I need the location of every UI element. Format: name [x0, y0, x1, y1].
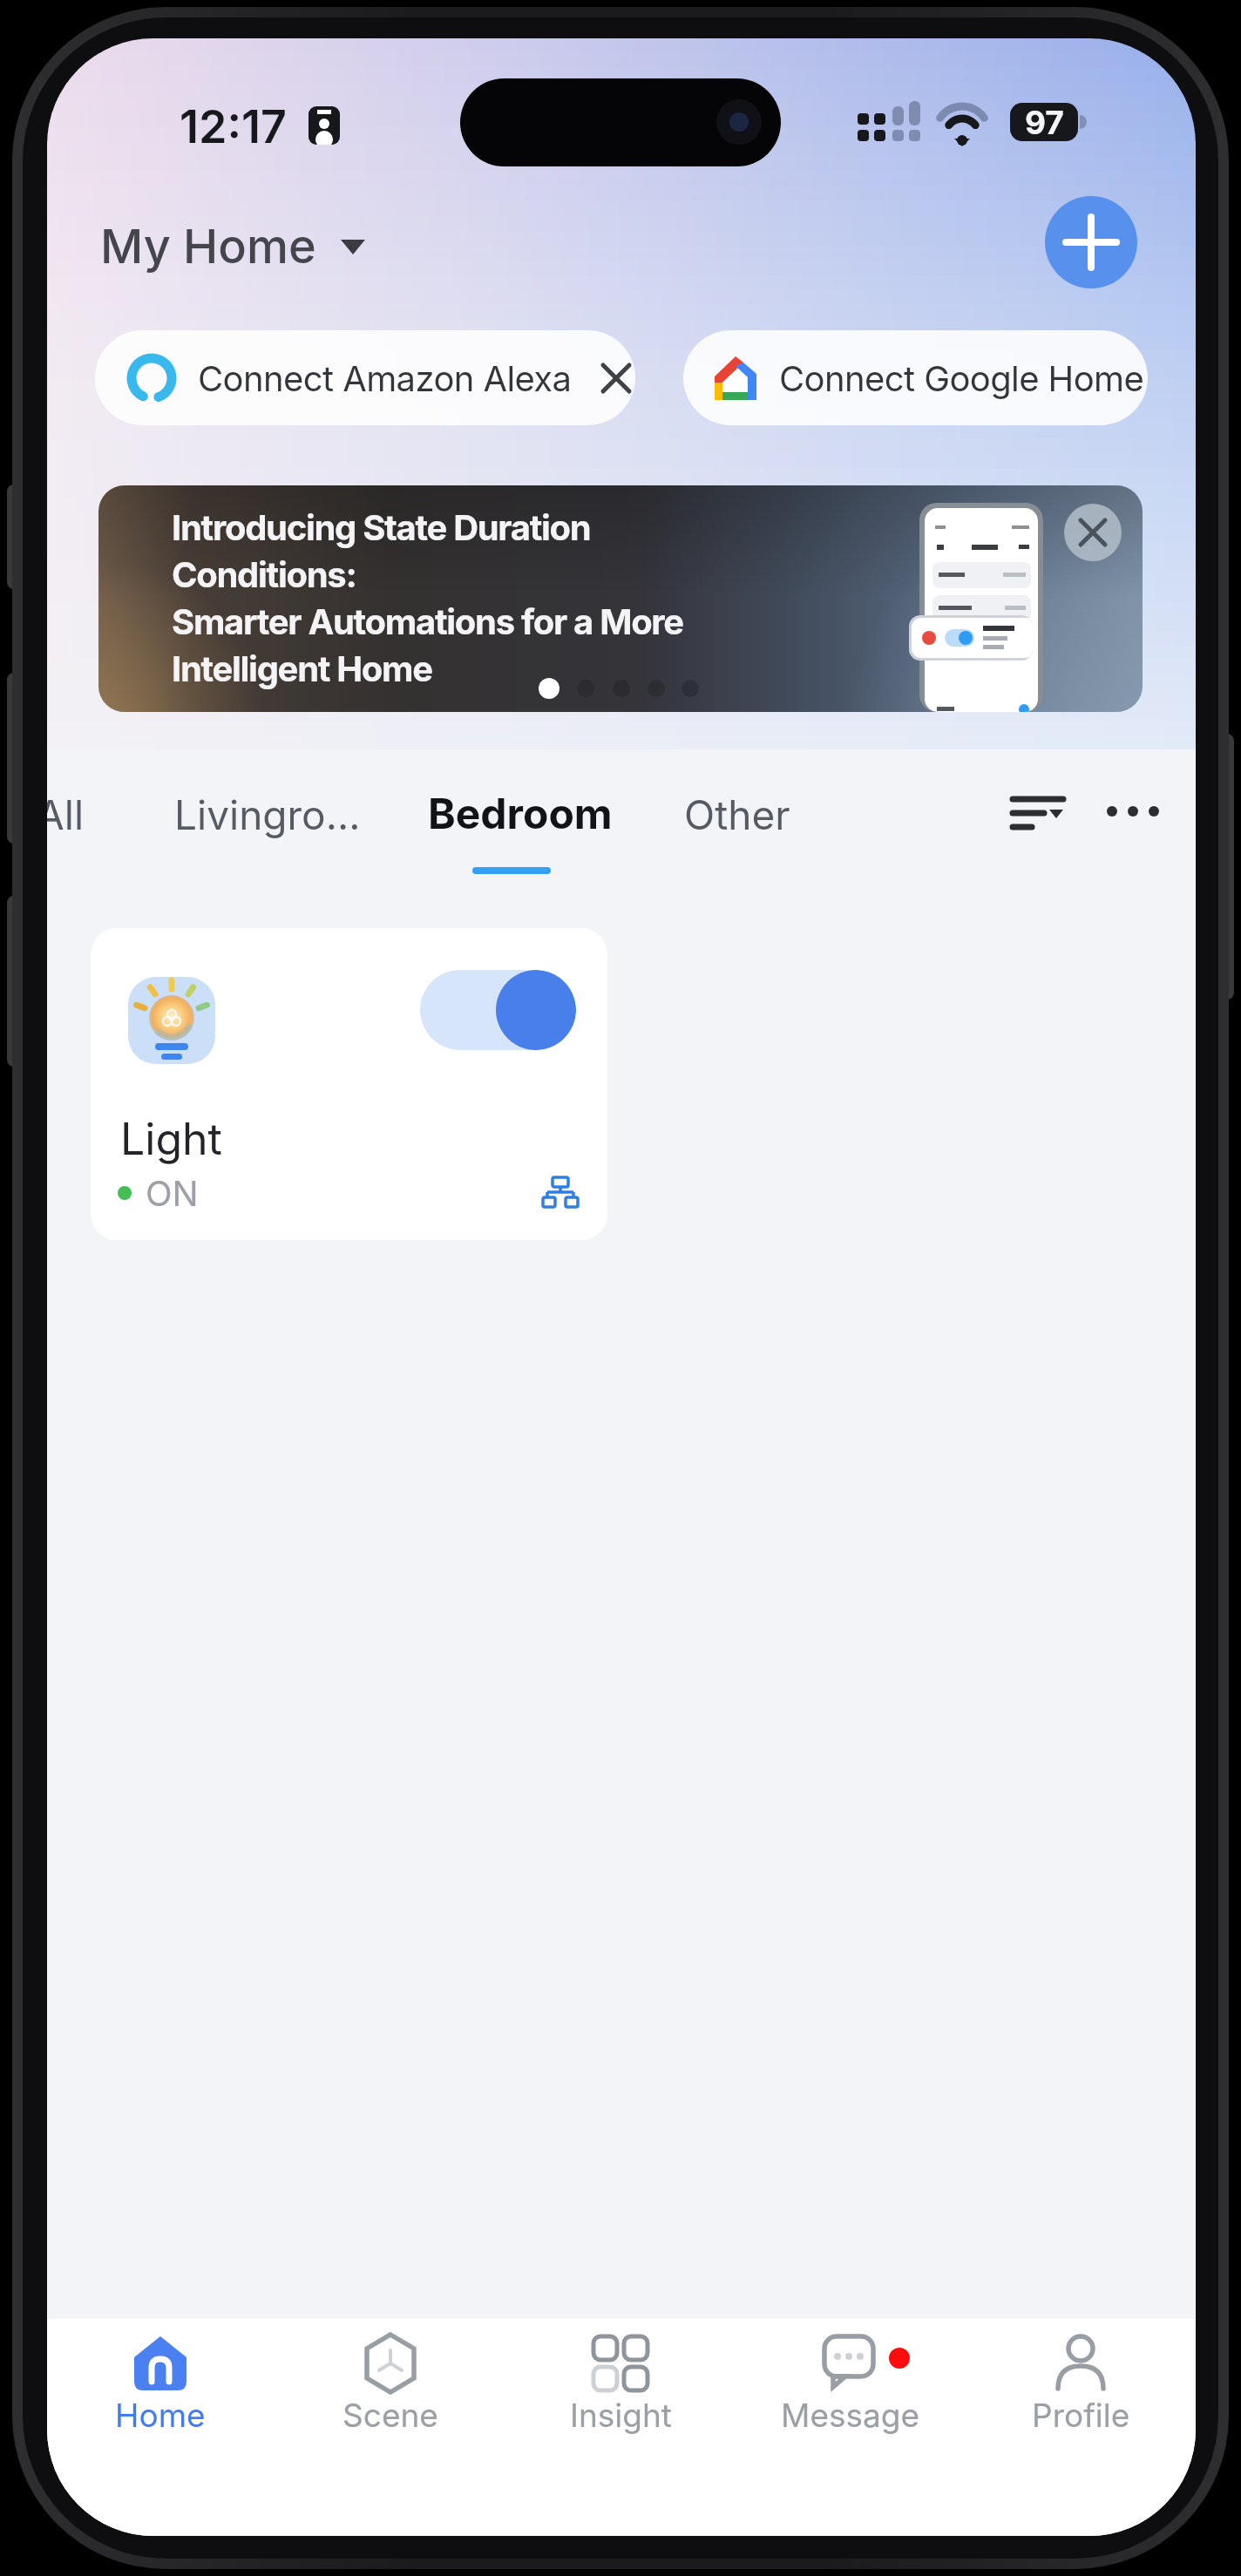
staticText: Insight — [570, 2396, 672, 2435]
button[interactable]: My Home — [100, 218, 365, 275]
button[interactable] — [1013, 796, 1063, 832]
button[interactable]: Introducing State Duration Conditions: S… — [98, 485, 1143, 712]
staticText: Message — [781, 2396, 920, 2435]
button[interactable] — [420, 970, 576, 1050]
button[interactable]: Scene — [312, 2331, 469, 2479]
button[interactable]: Connect Amazon Alexa — [95, 330, 635, 425]
staticText: My Home — [100, 218, 316, 275]
button[interactable]: Insight — [542, 2331, 699, 2479]
staticText: 97 — [1025, 103, 1064, 141]
staticText: ON — [146, 1172, 199, 1214]
button[interactable]: All — [47, 790, 85, 839]
button[interactable]: Home — [82, 2331, 239, 2479]
button[interactable]: Bedroom — [428, 788, 613, 838]
staticText: Connect Amazon Alexa — [198, 357, 572, 399]
button[interactable]: Connect Google Home — [683, 330, 1148, 425]
button[interactable]: Message — [772, 2331, 929, 2479]
button[interactable] — [1045, 196, 1137, 288]
button[interactable]: Profile — [1002, 2331, 1159, 2479]
button[interactable]: Light — [91, 928, 607, 1240]
staticText: Profile — [1032, 2396, 1130, 2435]
staticText: Connect Google Home — [779, 357, 1144, 399]
button[interactable]: Livingro... — [174, 790, 361, 839]
button[interactable] — [1064, 504, 1122, 561]
staticText: Home — [115, 2396, 206, 2435]
staticText: 12:17 — [180, 99, 287, 154]
staticText: Introducing State Duration Conditions: S… — [172, 506, 683, 690]
button[interactable] — [1106, 803, 1163, 820]
button[interactable]: Other — [684, 790, 790, 839]
staticText: Scene — [342, 2396, 438, 2435]
staticText: Light — [120, 1113, 222, 1165]
